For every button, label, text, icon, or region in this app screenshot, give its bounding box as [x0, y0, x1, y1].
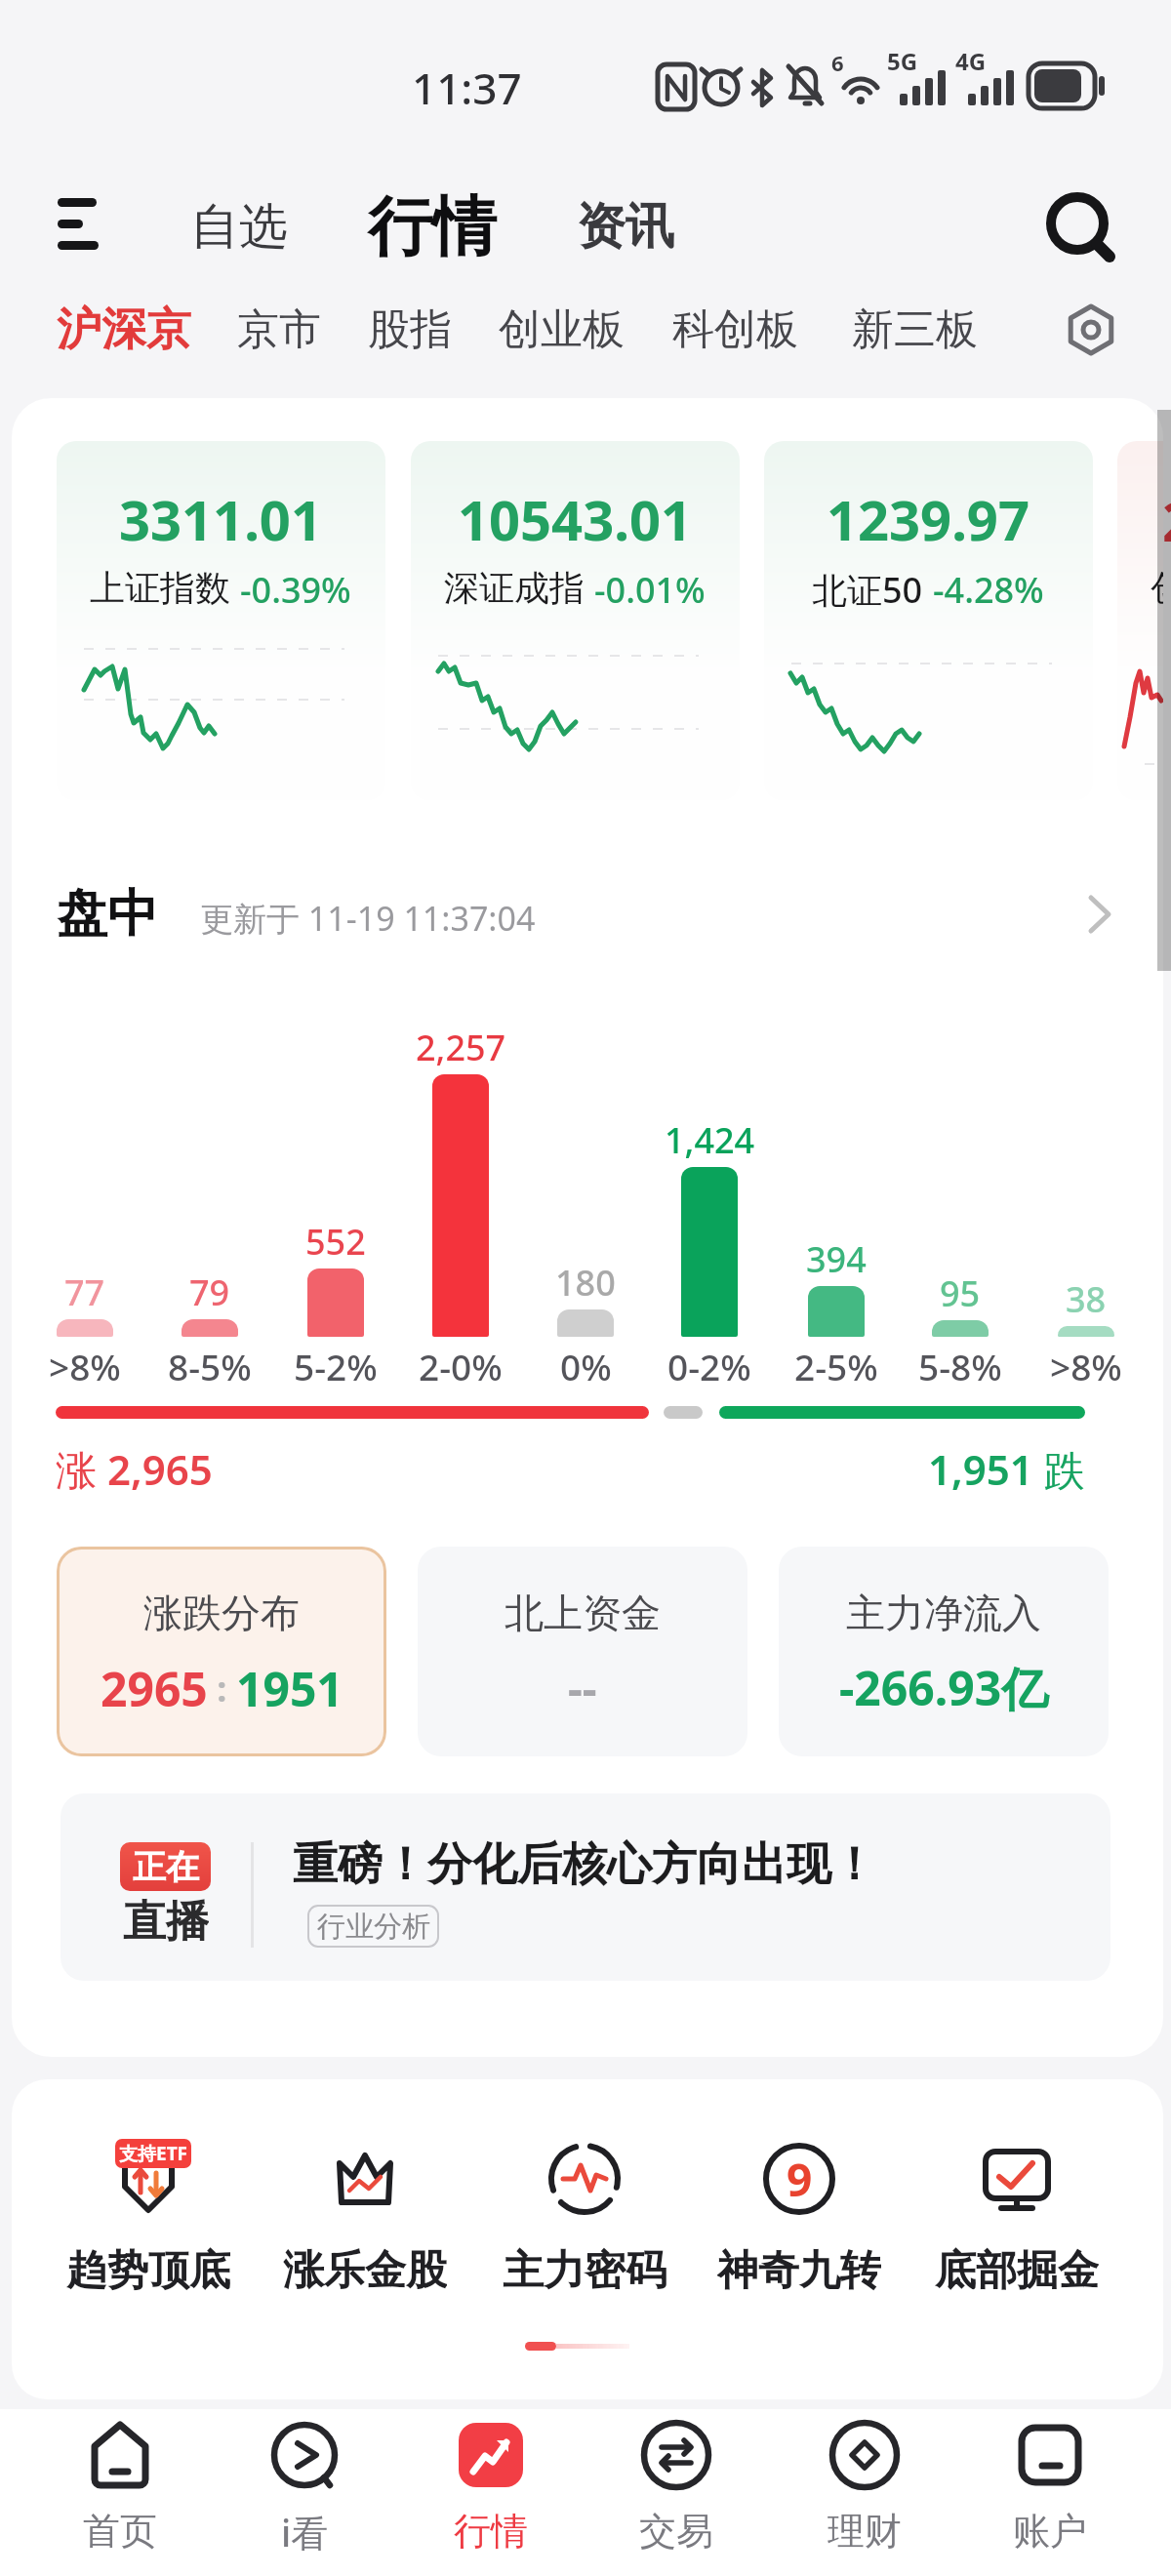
staticText: 2,257 [416, 1024, 506, 1071]
staticText: 涨乐金股 [283, 2245, 447, 2296]
button[interactable]: 10543.01 [411, 441, 740, 800]
staticText: 主力净流入 [846, 1589, 1041, 1637]
button[interactable] [1034, 181, 1127, 273]
staticText: 0-2% [667, 1342, 751, 1390]
staticText: 盘中 [57, 882, 158, 946]
button[interactable]: 账户 [972, 2417, 1128, 2569]
staticText: 账户 [1013, 2508, 1087, 2555]
staticText: 理财 [828, 2508, 902, 2555]
button[interactable]: 首页 [42, 2417, 198, 2569]
staticText: 1,951 跌 [928, 1441, 1085, 1497]
staticText: 2 [1162, 483, 1171, 557]
staticText: 科创板 [672, 303, 798, 356]
button[interactable]: 北上资金 [418, 1547, 747, 1756]
staticText: 神奇九转 [717, 2245, 881, 2296]
button[interactable]: 主力净流入 [779, 1547, 1109, 1756]
staticText: 自选 [190, 196, 288, 258]
staticText: 5-2% [294, 1342, 378, 1390]
staticText: 京市 [237, 303, 321, 356]
staticText: 创业板指 [1151, 566, 1163, 610]
button[interactable]: 神奇九转 [707, 2122, 892, 2314]
button[interactable]: 交易 [598, 2417, 754, 2569]
staticText: 交易 [639, 2508, 713, 2555]
staticText: 主力密码 [503, 2245, 666, 2296]
staticText: 上证指数 [90, 566, 230, 610]
staticText: -4.28% [933, 566, 1044, 614]
staticText: 正在 [133, 1846, 199, 1888]
staticText: 支持ETF [119, 2141, 188, 2166]
staticText: 3311.01 [119, 482, 322, 556]
button[interactable]: 理财 [787, 2417, 943, 2569]
staticText: 趋势顶底 [66, 2245, 230, 2296]
staticText: 10543.01 [458, 482, 692, 556]
staticText: 6 [831, 48, 844, 77]
staticText: 1951 [236, 1657, 343, 1720]
button[interactable]: 沪深京 [57, 298, 191, 362]
button[interactable]: 底部掘金 [924, 2122, 1110, 2314]
staticText: 5-8% [918, 1342, 1002, 1390]
staticText: -0.39% [240, 566, 351, 614]
staticText: 77 [64, 1268, 105, 1316]
staticText: 行业分析 [317, 1909, 430, 1945]
button[interactable] [1059, 298, 1127, 362]
staticText: 394 [806, 1235, 867, 1283]
button[interactable]: 3311.01 [57, 441, 385, 800]
staticText: 涨 2,965 [56, 1441, 213, 1497]
staticText: 行情 [368, 186, 497, 267]
staticText: 9 [787, 2149, 813, 2210]
staticText: -0.01% [594, 566, 706, 614]
button[interactable]: 行情 [351, 181, 512, 273]
staticText: 552 [305, 1218, 366, 1266]
staticText: 行情 [454, 2508, 528, 2555]
staticText: 2965 [101, 1657, 208, 1720]
staticText: 0% [560, 1342, 612, 1390]
staticText: 北证50 [812, 566, 923, 614]
button[interactable]: 创业板指 [1117, 441, 1163, 800]
staticText: 1239.97 [827, 482, 1030, 556]
staticText: -- [568, 1658, 597, 1719]
staticText: -266.93亿 [839, 1656, 1049, 1720]
staticText: 5G [887, 45, 918, 77]
staticText: 更新于 11-19 11:37:04 [200, 896, 536, 941]
staticText: >8% [49, 1342, 121, 1390]
button[interactable]: 涨跌分布 [57, 1547, 386, 1756]
staticText: 创业板 [499, 303, 625, 356]
staticText: : [208, 1665, 236, 1712]
staticText: >8% [1050, 1342, 1122, 1390]
button[interactable]: 科创板 [672, 298, 798, 362]
button[interactable]: 主力密码 [492, 2122, 677, 2314]
button[interactable]: 自选 [178, 190, 300, 263]
button[interactable] [44, 185, 112, 263]
staticText: 38 [1066, 1275, 1107, 1323]
staticText: 2-5% [794, 1342, 878, 1390]
button[interactable] [41, 866, 1134, 964]
button[interactable]: 1239.97 [764, 441, 1093, 800]
button[interactable]: 涨乐金股 [272, 2122, 458, 2314]
staticText: 1,424 [665, 1116, 755, 1164]
staticText: 资讯 [577, 196, 674, 258]
button[interactable]: 趋势顶底 [56, 2122, 241, 2314]
staticText: 底部掘金 [935, 2245, 1099, 2296]
staticText: 2-0% [419, 1342, 503, 1390]
staticText: 新三板 [852, 303, 978, 356]
staticText: 直播 [123, 1895, 209, 1946]
staticText: 8-5% [168, 1342, 252, 1390]
button[interactable]: 资讯 [564, 190, 686, 263]
staticText: 95 [940, 1269, 981, 1317]
staticText: 北上资金 [505, 1589, 661, 1637]
button[interactable]: 行情 [413, 2417, 569, 2569]
button[interactable]: i看 [226, 2417, 383, 2569]
button[interactable]: 京市 [237, 298, 321, 362]
staticText: 首页 [83, 2508, 157, 2555]
button[interactable]: 新三板 [852, 298, 978, 362]
staticText: 180 [555, 1259, 616, 1307]
staticText: 深证成指 [444, 566, 585, 610]
button[interactable]: 正在 [61, 1793, 1110, 1981]
button[interactable]: 股指 [368, 298, 452, 362]
staticText: 4G [955, 45, 987, 77]
staticText: i看 [281, 2507, 329, 2556]
staticText: 涨跌分布 [143, 1589, 300, 1637]
button[interactable]: 创业板 [499, 298, 625, 362]
staticText: 沪深京 [57, 302, 191, 358]
staticText: 重磅！分化后核心方向出现！ [293, 1836, 876, 1893]
